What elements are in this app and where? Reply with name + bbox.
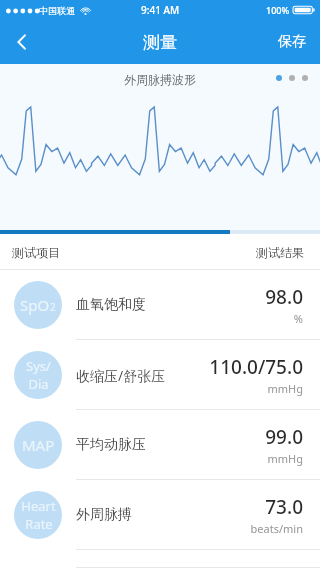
- button[interactable]: 测试项目: [0, 234, 60, 270]
- button[interactable]: SpO: [0, 270, 320, 340]
- staticText: 收缩压/舒张压: [76, 366, 166, 385]
- staticText: 外周脉搏: [76, 506, 132, 524]
- staticText: 测试结果: [256, 245, 304, 260]
- staticText: 2: [50, 300, 56, 314]
- staticText: mmHg: [267, 381, 303, 396]
- staticText: 99.0: [265, 424, 303, 450]
- staticText: %: [293, 311, 303, 326]
- staticText: Rate: [25, 515, 53, 533]
- staticText: Sys/: [26, 357, 51, 375]
- button[interactable]: 保存: [264, 20, 320, 64]
- staticText: 测试项目: [12, 245, 60, 260]
- button[interactable]: Heart: [0, 480, 320, 550]
- staticText: Heart: [21, 497, 56, 515]
- button[interactable]: 测试结果: [256, 234, 320, 270]
- staticText: 外周脉搏波形: [124, 72, 196, 87]
- staticText: 测量: [143, 32, 177, 53]
- staticText: 中国联通: [39, 5, 75, 16]
- staticText: beats/min: [250, 521, 303, 536]
- staticText: MAP: [22, 435, 55, 455]
- staticText: 平均动脉压: [76, 436, 146, 454]
- button[interactable]: Sys/: [0, 340, 320, 410]
- staticText: 110.0/75.0: [209, 354, 303, 380]
- staticText: 9:41 AM: [141, 3, 180, 17]
- staticText: 73.0: [265, 494, 303, 520]
- staticText: Dia: [28, 375, 49, 393]
- staticText: mmHg: [267, 451, 303, 466]
- staticText: 血氧饱和度: [76, 296, 146, 314]
- button[interactable]: [0, 550, 320, 568]
- button[interactable]: MAP: [0, 410, 320, 480]
- button[interactable]: Back: [0, 20, 44, 64]
- staticText: SpO: [20, 295, 50, 315]
- staticText: 保存: [278, 33, 306, 51]
- staticText: 100%: [266, 4, 290, 16]
- staticText: 98.0: [265, 284, 303, 310]
